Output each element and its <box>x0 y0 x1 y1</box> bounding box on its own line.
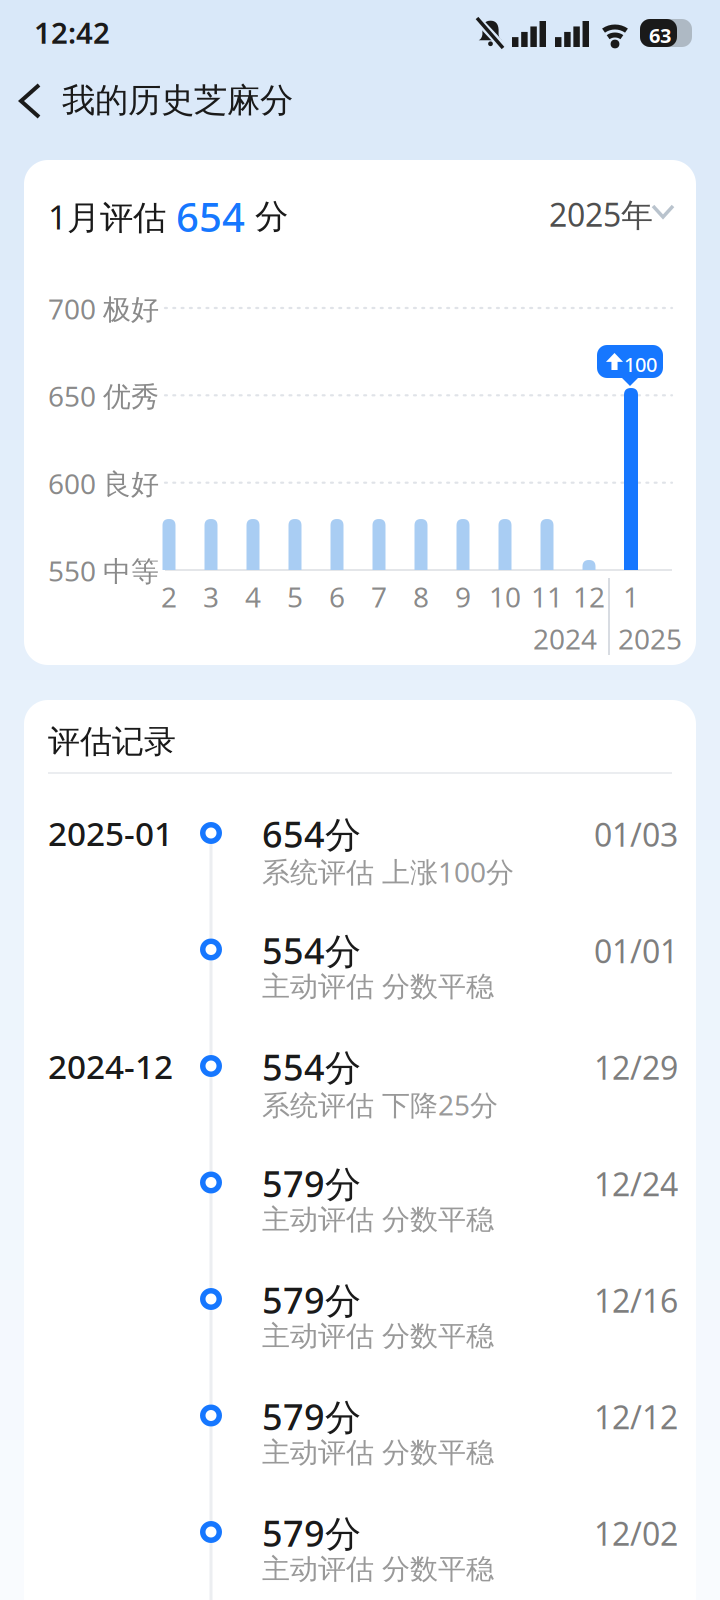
staticText: 650 优秀 <box>48 377 159 414</box>
staticText: 11 <box>531 578 563 615</box>
staticText: 579分 <box>262 1276 361 1324</box>
staticText: 700 极好 <box>48 290 159 327</box>
staticText: 主动评估 分数平稳 <box>262 1435 494 1470</box>
staticText: 2025年 <box>549 193 653 235</box>
staticText: 2024-12 <box>48 1044 173 1088</box>
staticText: 2025-01 <box>48 811 173 855</box>
button[interactable]: 2024-12 <box>24 1010 696 1126</box>
staticText: 6 <box>329 578 345 615</box>
staticText: 12 <box>573 578 605 615</box>
staticText: 分 <box>255 196 288 237</box>
staticText: 12/16 <box>594 1279 678 1321</box>
staticText: 12/24 <box>594 1162 678 1205</box>
staticText: 2 <box>161 578 177 615</box>
staticText: 654分 <box>262 810 361 858</box>
button[interactable]: 579分 <box>24 1243 696 1359</box>
staticText: 系统评估 上涨100分 <box>262 853 514 890</box>
staticText: 554分 <box>262 926 361 974</box>
staticText: 我的历史芝麻分 <box>62 80 293 121</box>
staticText: 1月评估 <box>48 194 166 239</box>
staticText: 579分 <box>262 1392 361 1440</box>
staticText: 系统评估 下降25分 <box>262 1086 498 1123</box>
staticText: 7 <box>371 578 387 615</box>
staticText: 主动评估 分数平稳 <box>262 969 494 1004</box>
staticText: 主动评估 分数平稳 <box>262 1202 494 1237</box>
staticText: 1 <box>623 578 639 615</box>
staticText: 12/02 <box>594 1512 678 1554</box>
staticText: 01/03 <box>594 813 678 855</box>
staticText: 10 <box>489 578 521 615</box>
staticText: 2024 <box>533 620 597 657</box>
staticText: 2025 <box>618 620 682 657</box>
button[interactable]: 2025年 <box>549 191 673 233</box>
staticText: 579分 <box>262 1159 361 1207</box>
staticText: 8 <box>413 578 429 615</box>
staticText: 12/29 <box>594 1046 678 1088</box>
staticText: 550 中等 <box>48 552 159 589</box>
staticText: 554分 <box>262 1043 361 1091</box>
staticText: 5 <box>287 578 303 615</box>
staticText: 12:42 <box>34 13 110 52</box>
staticText: 579分 <box>262 1509 361 1557</box>
button[interactable]: 554分 <box>24 893 696 1010</box>
staticText: 评估记录 <box>48 722 176 761</box>
staticText: 654 <box>166 190 255 243</box>
staticText: 9 <box>455 578 471 615</box>
staticText: 4 <box>245 578 261 615</box>
button[interactable]: 2025-01 <box>24 777 696 893</box>
staticText: 100 <box>624 351 657 378</box>
button[interactable]: 579分 <box>24 1359 696 1476</box>
staticText: 主动评估 分数平稳 <box>262 1552 494 1586</box>
staticText: 600 良好 <box>48 465 159 502</box>
button[interactable]: 579分 <box>24 1476 696 1592</box>
staticText: 12/12 <box>594 1395 678 1438</box>
staticText: 63 <box>649 22 671 49</box>
staticText: 3 <box>203 578 219 615</box>
staticText: 主动评估 分数平稳 <box>262 1319 494 1353</box>
button[interactable]: Back <box>13 77 47 125</box>
staticText: 01/01 <box>594 929 678 972</box>
button[interactable]: 579分 <box>24 1126 696 1243</box>
